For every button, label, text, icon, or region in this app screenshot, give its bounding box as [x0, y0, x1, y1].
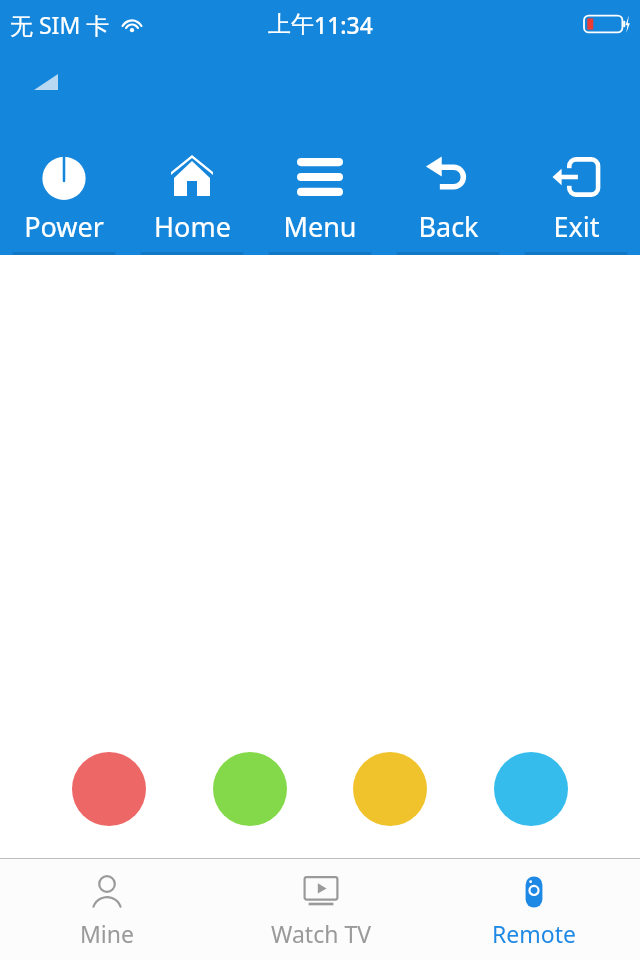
button[interactable]: Colour key 3: [353, 752, 427, 826]
button[interactable]: Power: [0, 148, 128, 255]
button[interactable]: Mine: [0, 859, 214, 960]
button[interactable]: Colour key 4: [494, 752, 568, 826]
staticText: 11:34: [314, 9, 373, 40]
staticText: Back: [418, 208, 479, 245]
button[interactable]: Exit: [512, 148, 640, 255]
staticText: Exit: [553, 208, 600, 245]
staticText: 无 SIM 卡: [10, 9, 110, 40]
staticText: 上午: [268, 10, 314, 39]
staticText: Menu: [283, 208, 357, 245]
button[interactable]: Remote: [427, 859, 640, 960]
staticText: Power: [24, 208, 104, 245]
button[interactable]: Menu: [256, 148, 384, 255]
staticText: Home: [154, 208, 231, 245]
staticText: Remote: [492, 918, 576, 949]
button[interactable]: Back: [384, 148, 512, 255]
staticText: Mine: [80, 918, 134, 949]
staticText: Watch TV: [271, 918, 371, 949]
button[interactable]: Colour key 1: [72, 752, 146, 826]
button[interactable]: Home: [128, 148, 256, 255]
button[interactable]: Colour key 2: [213, 752, 287, 826]
button[interactable]: Watch TV: [214, 859, 427, 960]
